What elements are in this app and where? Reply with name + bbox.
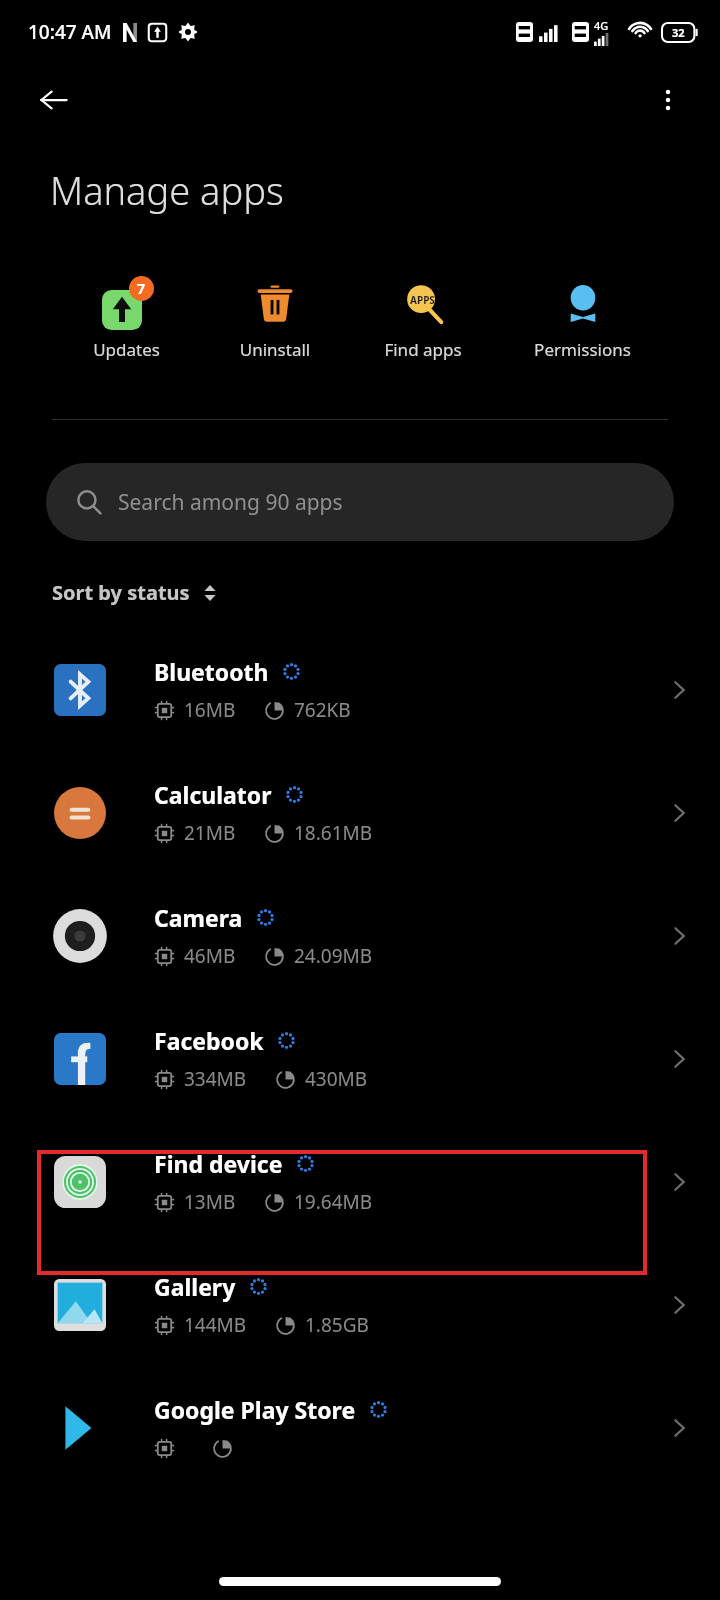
staticText: 430MB	[305, 1066, 368, 1092]
staticText: 4G	[594, 18, 609, 33]
button[interactable]: Sort by status	[52, 579, 220, 606]
button[interactable]: Bluetooth	[0, 628, 720, 751]
staticText: 32	[672, 25, 685, 40]
button[interactable]: Facebook	[0, 997, 720, 1120]
staticText: APPS	[410, 293, 435, 307]
staticText: Find apps	[349, 338, 497, 361]
staticText: 334MB	[184, 1066, 247, 1092]
button[interactable]: More options	[642, 74, 694, 126]
staticText: 16MB	[184, 697, 236, 723]
staticText: Camera	[154, 902, 243, 933]
staticText: Permissions	[497, 338, 668, 361]
staticText: Find device	[154, 1148, 283, 1179]
button[interactable]: Gallery	[0, 1243, 720, 1366]
button[interactable]: Google Play Store	[0, 1366, 720, 1489]
staticText: 1.85GB	[305, 1312, 369, 1338]
staticText: Facebook	[154, 1025, 264, 1056]
staticText: Manage apps	[50, 164, 284, 216]
staticText: Gallery	[154, 1271, 236, 1302]
button[interactable]: 7	[52, 276, 201, 361]
button[interactable]: Camera	[0, 874, 720, 997]
button[interactable]: Search among 90 apps	[46, 463, 674, 541]
staticText: Google Play Store	[154, 1394, 356, 1425]
staticText: 10:47 AM	[28, 19, 112, 45]
button[interactable]: APPS	[349, 276, 497, 361]
staticText: 18.61MB	[294, 820, 373, 846]
staticText: 762KB	[294, 697, 351, 723]
button[interactable]: Uninstall	[201, 276, 349, 361]
button[interactable]: Calculator	[0, 751, 720, 874]
button[interactable]: Back	[28, 74, 80, 126]
staticText: Uninstall	[201, 338, 349, 361]
staticText: 7	[137, 279, 146, 298]
staticText: 46MB	[184, 943, 236, 969]
staticText: 144MB	[184, 1312, 247, 1338]
staticText: Calculator	[154, 779, 272, 810]
button[interactable]: Find device	[0, 1120, 720, 1243]
button[interactable]: Permissions	[497, 276, 668, 361]
staticText: Sort by status	[52, 579, 190, 606]
staticText: 21MB	[184, 820, 236, 846]
staticText: Bluetooth	[154, 656, 269, 687]
staticText: 19.64MB	[294, 1189, 373, 1215]
staticText: 24.09MB	[294, 943, 373, 969]
staticText: Search among 90 apps	[118, 488, 343, 517]
staticText: 13MB	[184, 1189, 236, 1215]
staticText: Updates	[52, 338, 201, 361]
